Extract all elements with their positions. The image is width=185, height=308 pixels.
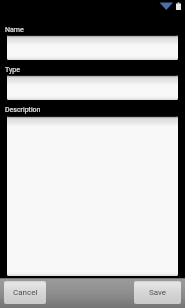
other: Status icons (159, 1, 183, 11)
button[interactable] (7, 116, 178, 276)
staticText: Name (5, 26, 24, 34)
staticText: Save (149, 288, 167, 297)
staticText: Description (5, 106, 41, 114)
staticText: Cancel (13, 288, 38, 297)
staticText: Type (5, 66, 20, 74)
button[interactable] (7, 35, 178, 60)
button[interactable]: Save (134, 281, 181, 304)
button[interactable]: Cancel (4, 281, 46, 304)
button[interactable] (7, 75, 178, 100)
